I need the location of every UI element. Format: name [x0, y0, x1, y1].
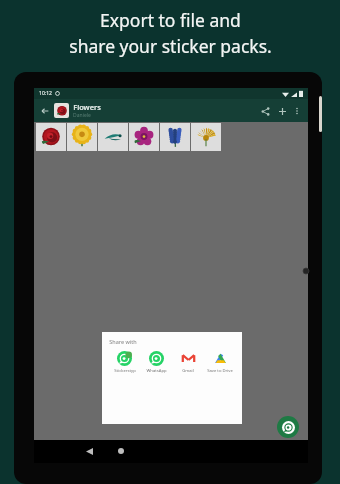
staticText: WhatsApp — [146, 368, 167, 374]
button[interactable]: Share — [258, 104, 272, 118]
staticText: Save to Drive — [207, 368, 233, 374]
button[interactable]: Stickerstyp — [109, 350, 140, 374]
button[interactable]: Save to Drive — [204, 350, 236, 374]
button[interactable]: Sticker — [36, 123, 66, 151]
button[interactable]: Back — [39, 105, 51, 117]
staticText: Stickerstyp — [114, 368, 136, 374]
staticText: Daniele — [73, 112, 91, 119]
staticText: Export to file and — [100, 8, 241, 32]
button[interactable]: Sticker — [160, 123, 190, 151]
button[interactable]: Gmail — [172, 350, 204, 374]
button[interactable]: Sticker — [67, 123, 97, 151]
button[interactable]: WhatsApp — [140, 350, 172, 374]
staticText: Share with — [109, 338, 137, 345]
button[interactable]: Back — [86, 448, 93, 455]
staticText: share your sticker packs. — [69, 34, 272, 58]
button[interactable]: Home — [118, 448, 124, 454]
button[interactable]: Sticker — [98, 123, 128, 151]
button[interactable]: Sticker — [191, 123, 221, 151]
staticText: Gmail — [182, 368, 194, 374]
staticText: 10:12 — [39, 90, 52, 97]
button[interactable]: Share to WhatsApp — [277, 416, 299, 438]
button[interactable]: More options — [291, 105, 303, 117]
button[interactable]: Add sticker — [275, 104, 289, 118]
staticText: Flowers — [73, 102, 101, 112]
button[interactable]: Sticker — [129, 123, 159, 151]
